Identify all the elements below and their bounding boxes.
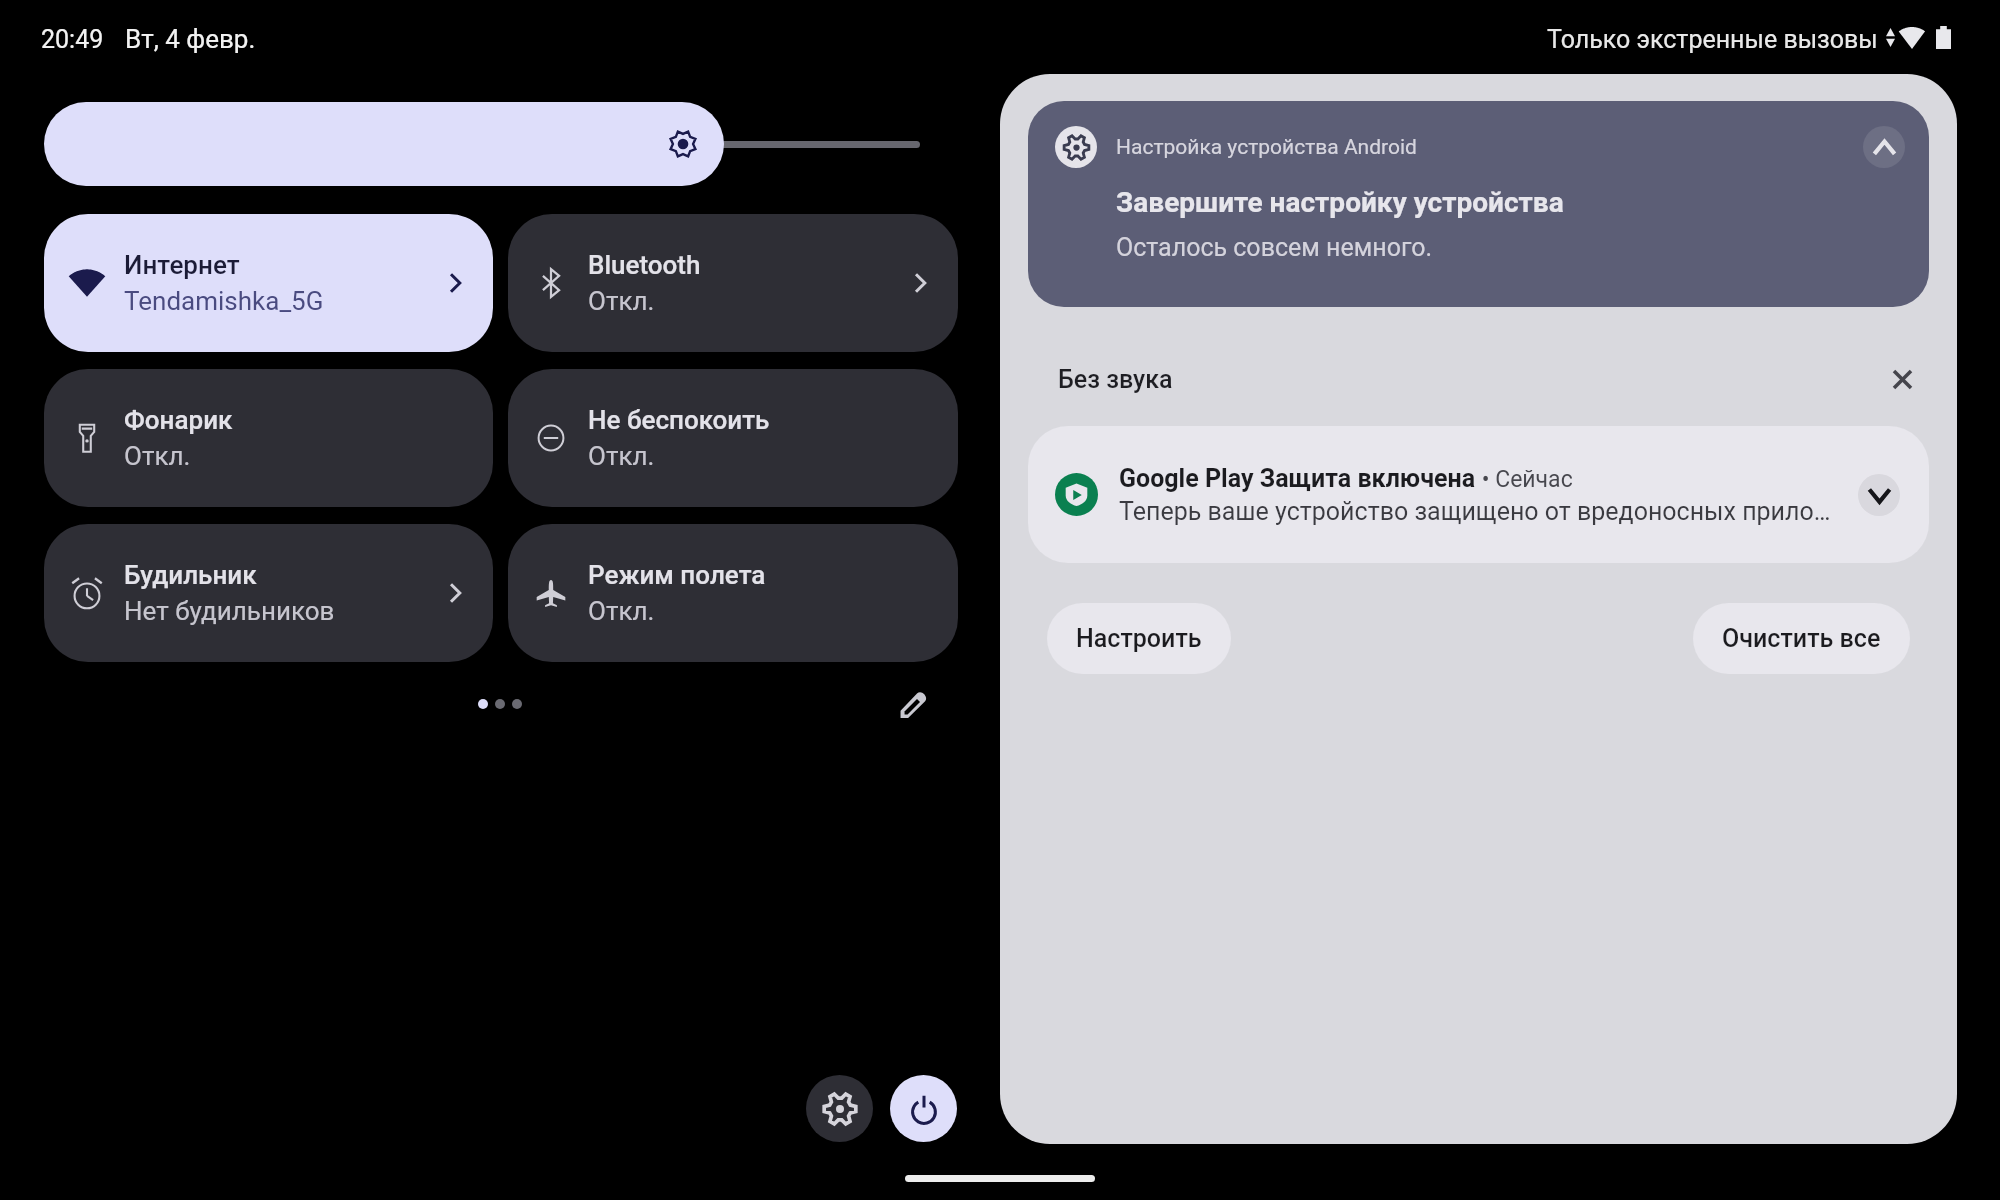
staticText: Откл. bbox=[124, 441, 191, 471]
button[interactable]: Изменить bbox=[890, 681, 936, 727]
staticText: Режим полета bbox=[588, 560, 766, 590]
button[interactable]: Настройки bbox=[806, 1075, 873, 1142]
button[interactable]: Будильник bbox=[44, 524, 493, 662]
staticText: Откл. bbox=[588, 286, 655, 316]
staticText: Завершите настройку устройства bbox=[1116, 186, 1564, 219]
staticText: Только экстренные вызовы bbox=[1547, 25, 1878, 54]
staticText: Вт, 4 февр. bbox=[125, 24, 256, 54]
button[interactable]: Свернуть bbox=[1863, 126, 1905, 168]
staticText: Теперь ваше устройство защищено от вредо… bbox=[1119, 497, 1831, 526]
staticText: Настроить bbox=[1076, 624, 1202, 653]
button[interactable]: Google Play Защита включена bbox=[1028, 426, 1929, 563]
button[interactable]: Развернуть bbox=[1858, 474, 1900, 516]
staticText: 20:49 bbox=[41, 25, 104, 54]
staticText: Откл. bbox=[588, 596, 655, 626]
button[interactable]: Закрыть bbox=[1879, 356, 1925, 402]
button[interactable]: Интернет bbox=[44, 214, 493, 352]
staticText: Bluetooth bbox=[588, 250, 701, 280]
button[interactable]: Настроить bbox=[1047, 603, 1231, 674]
button[interactable]: Очистить все bbox=[1693, 603, 1910, 674]
button[interactable]: Яркость bbox=[44, 102, 724, 186]
staticText: Нет будильников bbox=[124, 596, 335, 626]
staticText: Настройка устройства Android bbox=[1116, 135, 1417, 160]
staticText: • Сейчас bbox=[1476, 466, 1573, 493]
staticText: Google Play Защита включена bbox=[1119, 464, 1476, 493]
staticText: Без звука bbox=[1058, 365, 1173, 394]
staticText: Откл. bbox=[588, 441, 655, 471]
button[interactable]: Настройка устройства Android bbox=[1028, 101, 1929, 307]
staticText: Tendamishka_5G bbox=[124, 286, 324, 316]
staticText: Фонарик bbox=[124, 405, 233, 435]
button[interactable]: Не беспокоить bbox=[508, 369, 958, 507]
staticText: Интернет bbox=[124, 250, 240, 280]
button[interactable]: Режим полета bbox=[508, 524, 958, 662]
button[interactable]: Bluetooth bbox=[508, 214, 958, 352]
button[interactable]: Питание bbox=[890, 1075, 957, 1142]
staticText: Не беспокоить bbox=[588, 405, 770, 435]
staticText: Осталось совсем немного. bbox=[1116, 233, 1433, 262]
staticText: Будильник bbox=[124, 560, 257, 590]
staticText: Очистить все bbox=[1722, 624, 1881, 653]
button[interactable]: Фонарик bbox=[44, 369, 493, 507]
